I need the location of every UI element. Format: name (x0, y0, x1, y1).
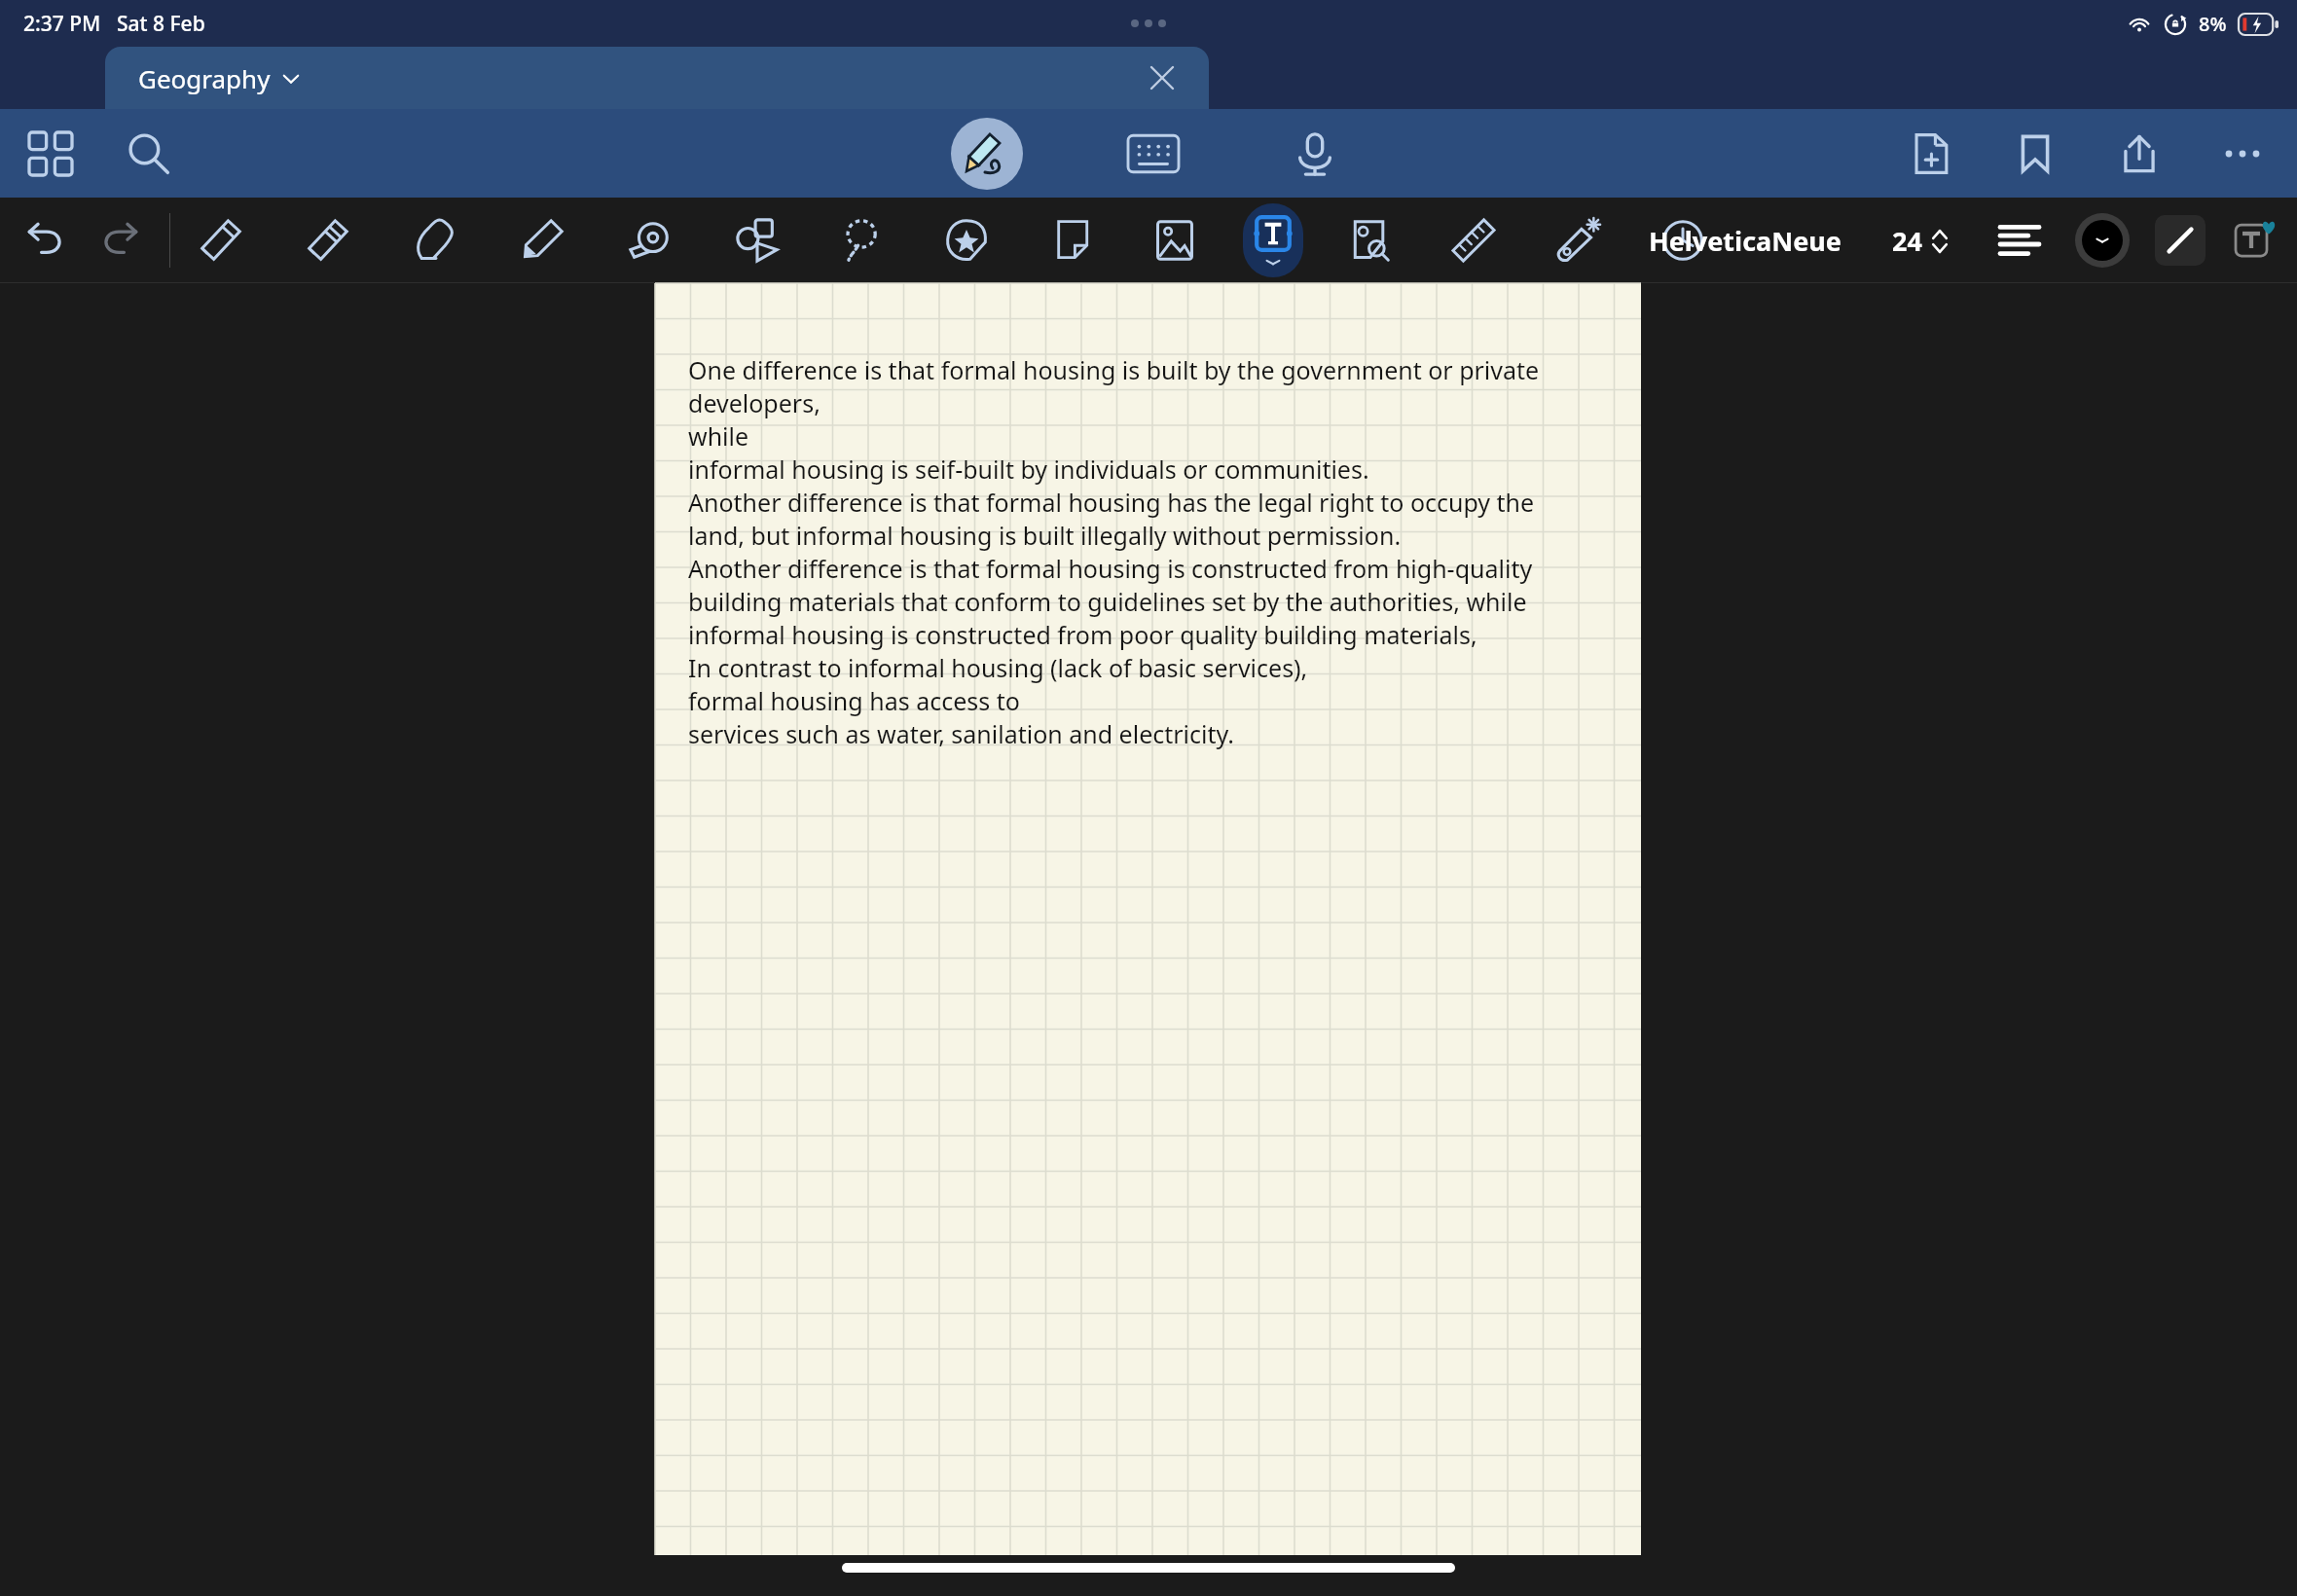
staticText: Sat 8 Feb (117, 10, 205, 38)
staticText: 8% (2199, 11, 2227, 37)
staticText: while (688, 419, 749, 453)
staticText: building materials that conform to guide… (688, 585, 1527, 618)
button[interactable]: Share (2110, 125, 2169, 183)
button[interactable]: Pencil (299, 211, 357, 270)
button[interactable]: Search in page (1340, 211, 1399, 270)
staticText: informal housing is constructed from poo… (688, 618, 1477, 651)
staticText: 24 (1892, 223, 1922, 259)
button[interactable]: Close tab (1141, 56, 1184, 99)
staticText: One difference is that formal housing is… (688, 353, 1540, 386)
staticText: informal housing is seif-built by indivi… (688, 453, 1369, 486)
button[interactable]: Geography (105, 47, 1209, 109)
button[interactable]: Text styles favourite (2227, 213, 2281, 268)
button[interactable]: Text colour (2075, 213, 2130, 268)
staticText: 2:37 PM (23, 10, 101, 38)
button[interactable]: Search (119, 124, 179, 184)
staticText: Another difference is that formal housin… (688, 552, 1533, 585)
button[interactable]: Redo (91, 212, 148, 269)
button[interactable]: Undo (18, 212, 74, 269)
staticText: formal housing has access to (688, 684, 1020, 717)
button[interactable]: Stroke style (2155, 215, 2206, 266)
button[interactable]: Microphone (1284, 123, 1346, 185)
button[interactable]: Align (1993, 214, 2046, 267)
button[interactable]: Eraser (406, 211, 464, 270)
button[interactable]: Magic tool (1549, 210, 1609, 271)
button[interactable]: History (1654, 211, 1712, 270)
button[interactable]: Lasso select (834, 212, 891, 269)
button[interactable]: More options (2215, 127, 2270, 181)
staticText: developers, (688, 386, 820, 419)
staticText: services such as water, sanilation and e… (688, 717, 1234, 750)
staticText: Geography (138, 61, 271, 95)
staticText: In contrast to informal housing (lack of… (688, 651, 1308, 684)
button[interactable]: Stickers (937, 211, 996, 270)
button[interactable]: Grid view (21, 125, 80, 183)
button[interactable]: Shapes (727, 210, 787, 271)
button[interactable]: Pen (192, 211, 250, 270)
button[interactable]: 24 (1892, 223, 1949, 259)
button[interactable]: Highlighter (513, 211, 571, 270)
button[interactable]: Ruler (1443, 210, 1504, 271)
button[interactable]: Keyboard (1120, 121, 1186, 187)
button[interactable]: New page (1902, 125, 1960, 183)
button[interactable]: Draw (951, 118, 1023, 190)
button[interactable]: Tape (620, 210, 680, 271)
staticText: Another difference is that formal housin… (688, 486, 1535, 519)
staticText: land, but informal housing is built ille… (688, 519, 1402, 552)
button[interactable]: Text tool (1243, 203, 1303, 277)
button[interactable]: HelveticaNeue (1649, 223, 1841, 259)
button[interactable]: Note (1042, 212, 1099, 269)
button[interactable]: Bookmark (2007, 126, 2063, 182)
button[interactable]: Image (1146, 211, 1204, 270)
